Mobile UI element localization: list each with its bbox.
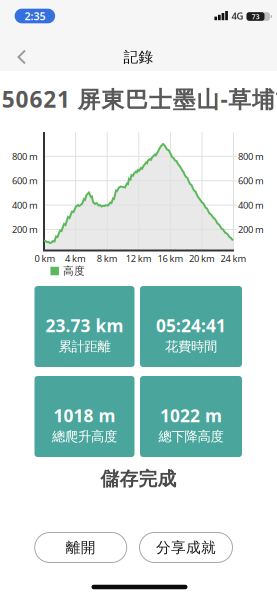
button[interactable]: 離開 bbox=[34, 532, 127, 563]
staticText: 2:35 bbox=[24, 9, 45, 23]
button[interactable]: 分享成就 bbox=[139, 532, 233, 563]
staticText: 儲存完成 bbox=[100, 467, 176, 490]
staticText: 記錄 bbox=[123, 48, 153, 66]
staticText: 1018 m bbox=[53, 404, 115, 427]
staticText: 800 m bbox=[12, 150, 38, 162]
staticText: 0 km bbox=[34, 252, 55, 265]
staticText: 4 km bbox=[65, 252, 86, 265]
staticText: 總下降高度 bbox=[158, 428, 223, 445]
staticText: 20 km bbox=[189, 252, 215, 265]
staticText: 73 bbox=[252, 12, 260, 21]
staticText: 600 m bbox=[12, 174, 38, 187]
staticText: 800 m bbox=[238, 150, 264, 162]
staticText: 累計距離 bbox=[58, 338, 110, 355]
staticText: 1022 m bbox=[160, 404, 222, 427]
staticText: 花費時間 bbox=[165, 338, 217, 355]
staticText: 600 m bbox=[238, 174, 264, 187]
staticText: 05:24:41 bbox=[156, 314, 226, 337]
staticText: 200 m bbox=[238, 223, 264, 236]
staticText: 24 km bbox=[220, 252, 246, 265]
button[interactable] bbox=[0, 35, 44, 79]
staticText: 23.73 km bbox=[45, 314, 123, 337]
staticText: 400 m bbox=[12, 199, 38, 211]
staticText: 分享成就 bbox=[156, 538, 216, 556]
staticText: 總爬升高度 bbox=[52, 428, 117, 445]
staticText: 高度 bbox=[63, 264, 85, 277]
staticText: 200 m bbox=[12, 223, 38, 236]
staticText: 8 km bbox=[97, 252, 118, 265]
staticText: 400 m bbox=[238, 199, 264, 211]
staticText: 4G bbox=[231, 10, 243, 22]
staticText: 150621 屏東巴士墨山-草埔古 bbox=[0, 84, 277, 114]
staticText: 16 km bbox=[157, 252, 183, 265]
staticText: 12 km bbox=[126, 252, 152, 265]
staticText: 離開 bbox=[66, 538, 96, 556]
